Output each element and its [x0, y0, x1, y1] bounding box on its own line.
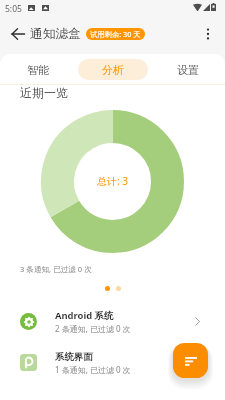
button[interactable]: 系统界面: [0, 342, 225, 383]
staticText: 3 条通知, 已过滤 0 次: [20, 264, 92, 274]
staticText: 设置: [177, 63, 199, 77]
staticText: 分析: [102, 63, 124, 77]
button[interactable]: Android 系统: [0, 301, 225, 342]
button[interactable]: Back: [7, 23, 29, 45]
staticText: 1 条通知, 已过滤 0 次: [55, 364, 131, 375]
staticText: 系统界面: [55, 351, 93, 363]
staticText: 智能: [27, 63, 49, 77]
button[interactable]: 试用剩余: 30 天: [86, 28, 145, 40]
button[interactable]: 设置: [153, 59, 223, 80]
staticText: 近期一览: [20, 85, 68, 100]
staticText: 总计: 3: [97, 174, 128, 188]
staticText: 2 条通知, 已过滤 0 次: [55, 323, 131, 334]
staticText: 通知滤盒: [30, 26, 81, 42]
button[interactable]: 分析: [78, 59, 148, 80]
staticText: Android 系统: [55, 309, 114, 322]
button[interactable]: 智能: [3, 59, 73, 80]
button[interactable]: Filter: [173, 343, 208, 378]
staticText: 5:05: [5, 3, 22, 15]
button[interactable]: More options: [197, 23, 219, 45]
staticText: 试用剩余: 30 天: [90, 29, 141, 39]
